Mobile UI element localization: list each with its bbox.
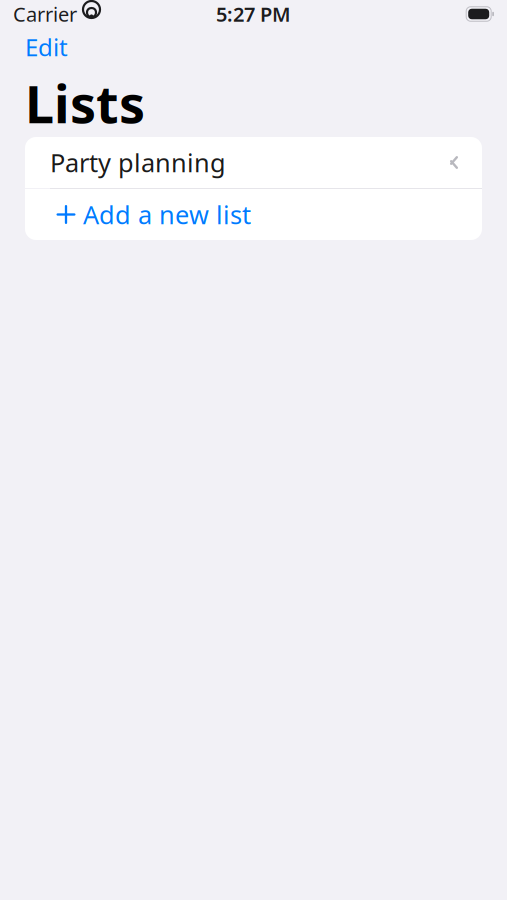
staticText: 5:27 PM: [216, 1, 291, 27]
staticText: Carrier: [13, 1, 77, 27]
button[interactable]: Add a new list: [25, 189, 482, 240]
button[interactable]: Edit: [0, 24, 93, 70]
staticText: Party planning: [50, 146, 226, 179]
staticText: Add a new list: [83, 198, 251, 231]
staticText: Lists: [25, 68, 145, 138]
staticText: Edit: [25, 31, 68, 63]
button[interactable]: Party planning: [25, 137, 482, 188]
